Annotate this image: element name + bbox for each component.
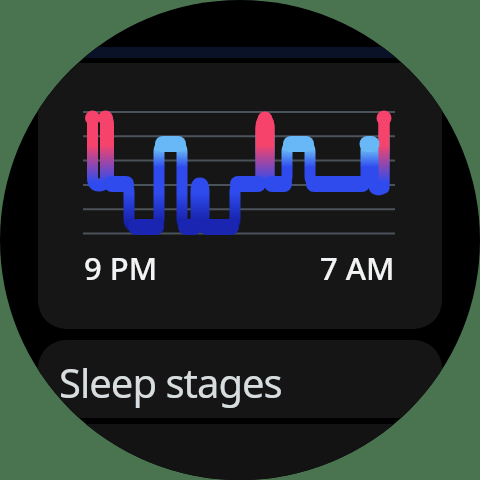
staticText: 7 AM: [320, 247, 395, 289]
button[interactable]: Sleep stages: [38, 340, 442, 418]
button[interactable]: [38, 63, 442, 329]
staticText: Sleep stages: [59, 355, 282, 409]
staticText: 9 PM: [84, 247, 158, 289]
